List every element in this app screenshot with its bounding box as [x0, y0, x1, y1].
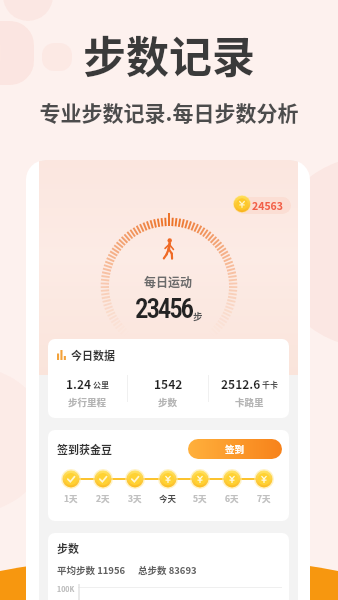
- staticText: 1天: [64, 492, 78, 504]
- staticText: 23456: [135, 293, 192, 325]
- staticText: 100K: [57, 584, 75, 594]
- staticText: 步数: [158, 395, 178, 409]
- staticText: 今天: [159, 492, 177, 504]
- staticText: 今日数据: [71, 347, 115, 363]
- button[interactable]: 5天: [190, 469, 210, 504]
- button[interactable]: 签到: [188, 439, 282, 459]
- staticText: 3天: [128, 492, 142, 504]
- staticText: 24563: [252, 198, 283, 213]
- staticText: 平均步数 11956: [57, 563, 126, 577]
- staticText: 千卡: [262, 379, 278, 391]
- button[interactable]: 7天: [254, 469, 274, 504]
- staticText: 专业步数记录.每日步数分析: [0, 97, 338, 127]
- staticText: 每日运动: [144, 273, 193, 290]
- staticText: 总步数 83693: [138, 563, 197, 577]
- staticText: 签到: [225, 442, 245, 456]
- staticText: 签到获金豆: [57, 441, 112, 457]
- staticText: 步行里程: [68, 395, 107, 409]
- other: Walking: [162, 238, 176, 260]
- staticText: 2512.6: [221, 375, 261, 392]
- staticText: 1542: [154, 375, 183, 392]
- button[interactable]: 2天: [93, 469, 113, 504]
- staticText: 7天: [257, 492, 271, 504]
- button[interactable]: 今日数据: [48, 339, 289, 418]
- staticText: 公里: [93, 379, 109, 391]
- staticText: 2天: [96, 492, 110, 504]
- staticText: 5天: [193, 492, 207, 504]
- button[interactable]: 今天: [158, 469, 178, 504]
- staticText: 卡路里: [235, 395, 264, 409]
- staticText: 步数: [57, 540, 79, 556]
- staticText: 步数记录: [0, 23, 338, 85]
- button[interactable]: 24563: [235, 197, 291, 214]
- staticText: 步: [193, 309, 203, 323]
- button[interactable]: 3天: [125, 469, 145, 504]
- staticText: 6天: [225, 492, 239, 504]
- staticText: 1.24: [66, 375, 92, 392]
- button[interactable]: 1天: [61, 469, 81, 504]
- button[interactable]: 6天: [222, 469, 242, 504]
